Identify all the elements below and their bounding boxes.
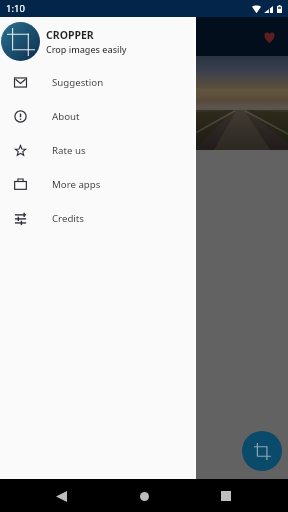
button[interactable]: Suggestion (0, 65, 196, 99)
staticText: More apps (52, 178, 101, 191)
button[interactable]: More apps (0, 167, 196, 201)
staticText: Rate us (52, 144, 86, 157)
button[interactable]: Recents (214, 484, 238, 508)
button[interactable]: Favourites (257, 25, 281, 49)
staticText: Credits (52, 212, 84, 225)
button[interactable]: CROPPER (1, 17, 196, 65)
button[interactable]: Home (132, 484, 156, 508)
button[interactable]: Rate us (0, 133, 196, 167)
button[interactable]: Crop image (242, 431, 282, 471)
staticText: About (52, 110, 80, 123)
staticText: Suggestion (52, 76, 104, 89)
button[interactable]: Back (49, 484, 73, 508)
button[interactable]: About (0, 99, 196, 133)
button[interactable]: Credits (0, 201, 196, 235)
staticText: Crop images easily (46, 43, 127, 55)
staticText: CROPPER (46, 28, 94, 42)
staticText: 1:10 (6, 2, 25, 15)
